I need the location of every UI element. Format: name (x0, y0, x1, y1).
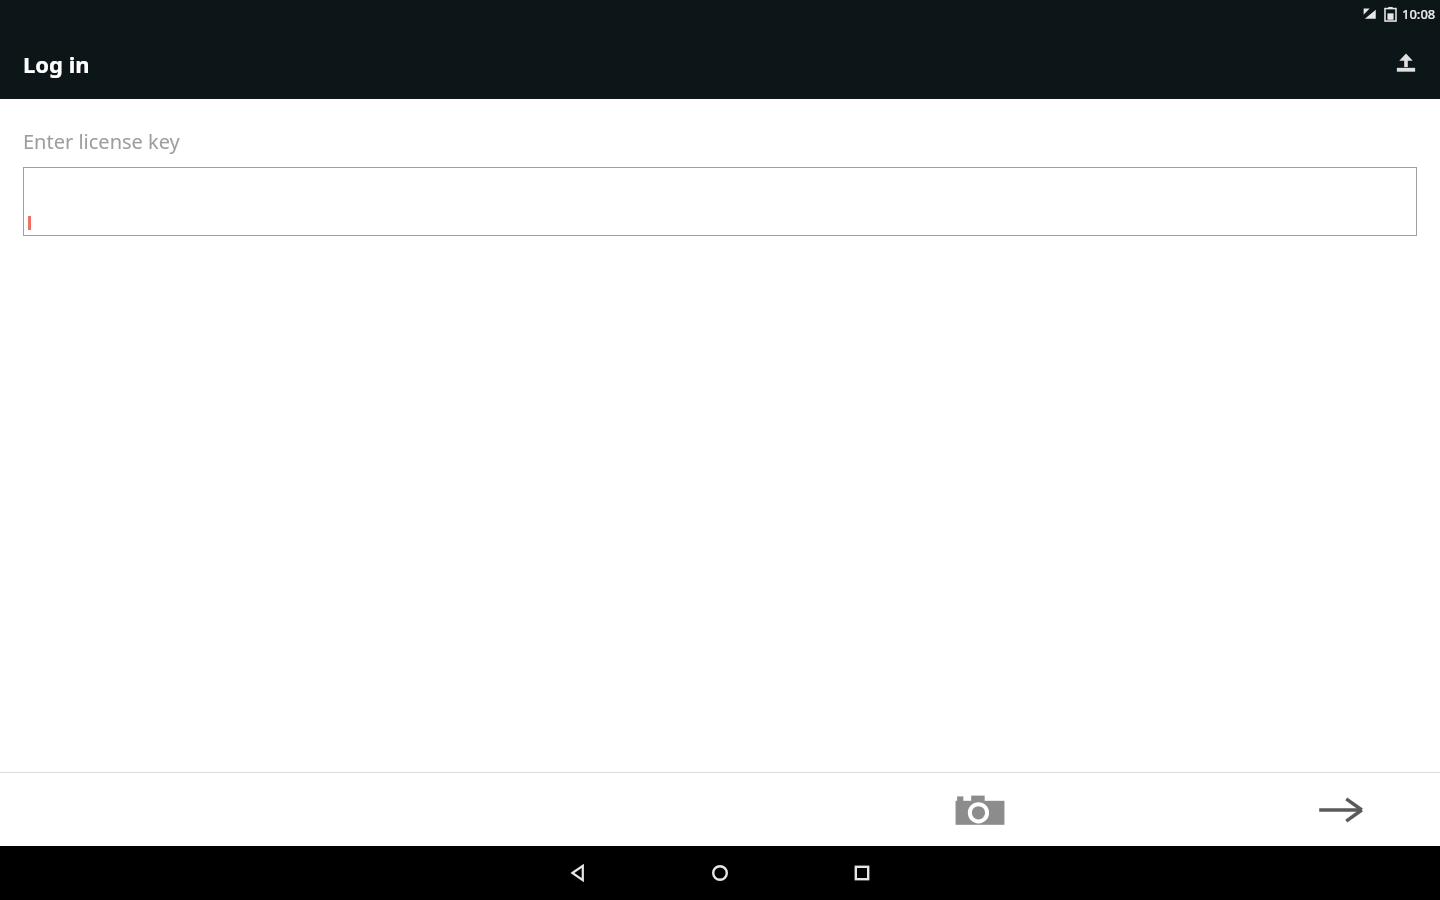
button[interactable]: Next (1260, 773, 1420, 846)
staticText: Log in (23, 49, 90, 79)
button[interactable]: Upload (1382, 40, 1430, 88)
button[interactable]: Back (548, 846, 608, 900)
staticText: 10:08 (1402, 5, 1436, 23)
button[interactable]: Home (690, 846, 750, 900)
button[interactable]: Scan with camera (900, 773, 1060, 846)
button[interactable]: Recent apps (832, 846, 892, 900)
button[interactable] (23, 167, 1417, 236)
staticText: Enter license key (23, 128, 180, 155)
